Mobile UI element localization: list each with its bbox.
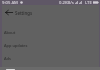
button[interactable]: Home [6,69,15,70]
staticText: Settings [15,10,33,16]
staticText: 9:05 AM [2,0,18,5]
button[interactable]: App updates [2,39,99,52]
staticText: LTE [85,0,92,5]
staticText: App updates [4,43,28,48]
staticText: About [4,30,16,35]
staticText: Ads [4,56,11,61]
button[interactable]: About [2,26,99,39]
staticText: 0.2KB/s [59,0,74,5]
button[interactable]: Back [2,6,15,19]
